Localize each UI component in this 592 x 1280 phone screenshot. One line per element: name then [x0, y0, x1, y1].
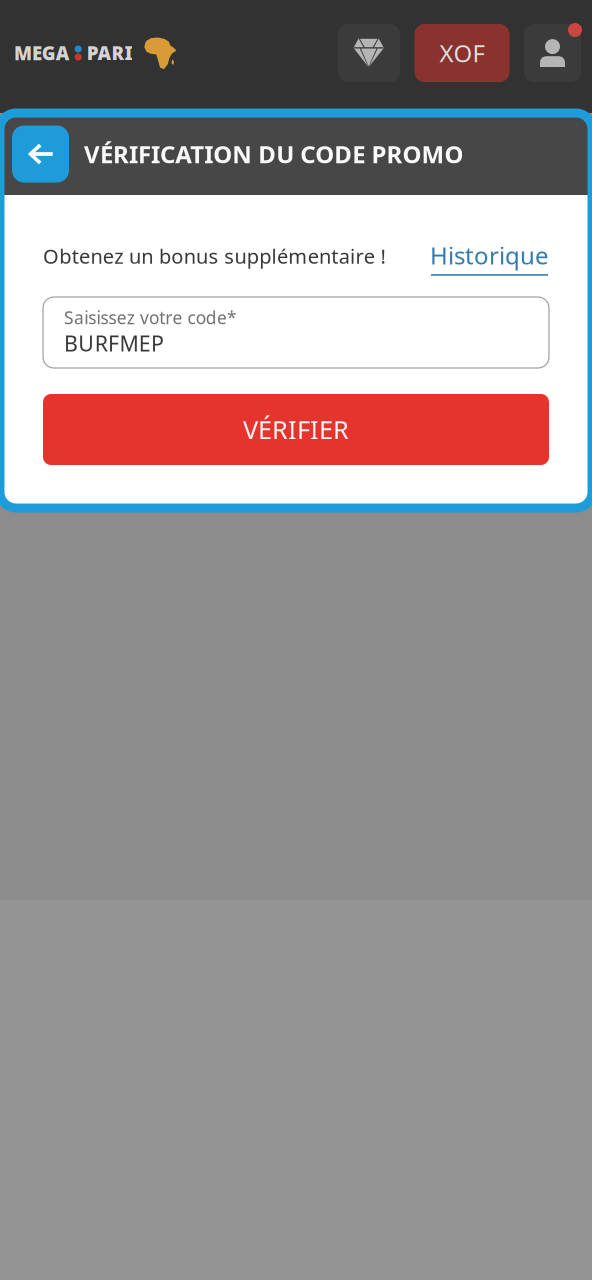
button[interactable]: XOF: [414, 24, 509, 82]
button[interactable]: Bonuses: [338, 24, 400, 82]
button[interactable]: Back: [12, 125, 69, 182]
staticText: PARI: [87, 41, 132, 65]
staticText: MEGA: [14, 41, 70, 65]
staticText: Saisissez votre code*: [64, 306, 237, 329]
button[interactable]: Account: [524, 24, 581, 82]
staticText: Historique: [430, 239, 549, 271]
staticText: XOF: [439, 37, 484, 69]
staticText: VÉRIFICATION DU CODE PROMO: [84, 138, 463, 170]
staticText: Obtenez un bonus supplémentaire !: [43, 243, 385, 269]
button[interactable]: Historique: [430, 236, 549, 276]
staticText: BURFMEP: [64, 329, 164, 357]
button[interactable]: VÉRIFIER: [43, 394, 549, 465]
staticText: VÉRIFIER: [243, 413, 349, 446]
